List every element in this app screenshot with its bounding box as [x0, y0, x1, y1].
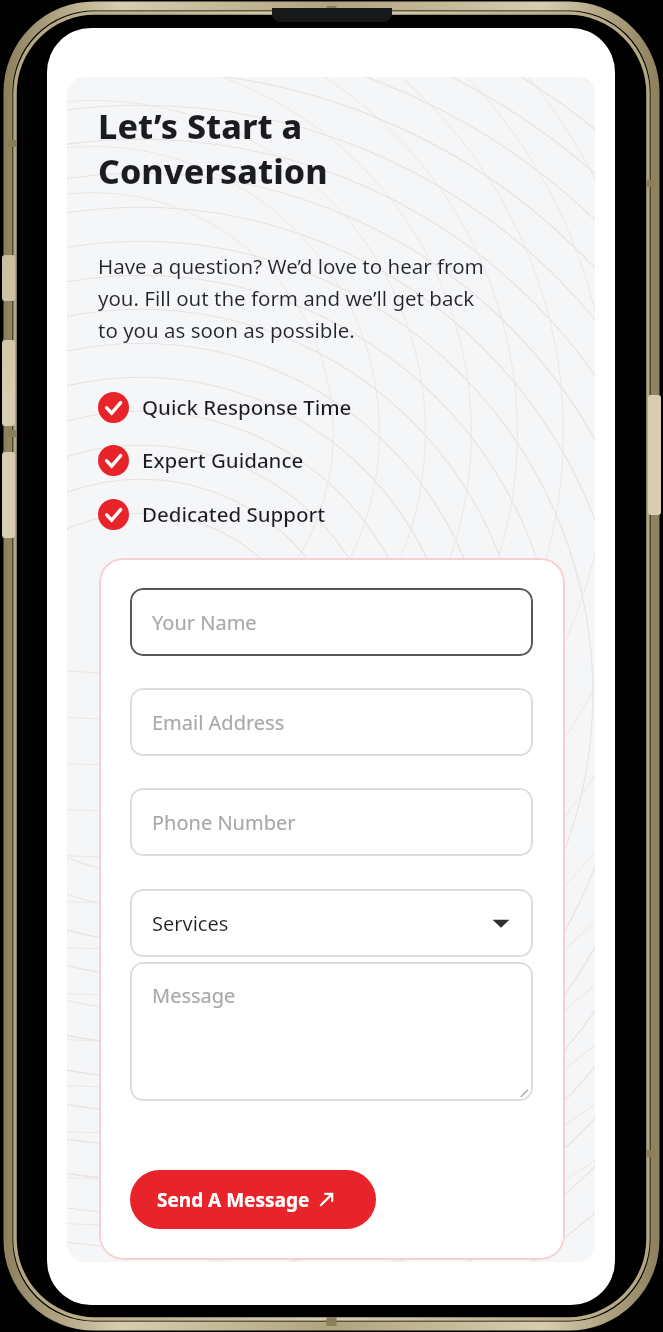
button[interactable]: Dedicated Support: [98, 497, 326, 531]
staticText: Services: [152, 910, 229, 937]
button[interactable]: Expert Guidance: [98, 443, 304, 477]
button[interactable]: Services: [130, 889, 533, 957]
button[interactable]: Your Name: [130, 588, 533, 656]
button[interactable]: Email Address: [130, 688, 533, 756]
button[interactable]: Send A Message: [130, 1170, 376, 1229]
button[interactable]: Message: [130, 962, 533, 1101]
button[interactable]: Phone Number: [130, 788, 533, 856]
staticText: Email Address: [152, 709, 285, 736]
staticText: Let’s Start a Conversation: [98, 103, 328, 193]
staticText: Dedicated Support: [142, 500, 326, 528]
staticText: Have a question? We’d love to hear from …: [98, 252, 484, 344]
staticText: Quick Response Time: [142, 393, 352, 421]
staticText: Expert Guidance: [142, 446, 304, 474]
staticText: Send A Message: [157, 1187, 310, 1213]
button[interactable]: Quick Response Time: [98, 390, 352, 424]
staticText: Phone Number: [152, 809, 296, 836]
staticText: Message: [152, 982, 236, 1009]
staticText: Your Name: [152, 609, 257, 636]
